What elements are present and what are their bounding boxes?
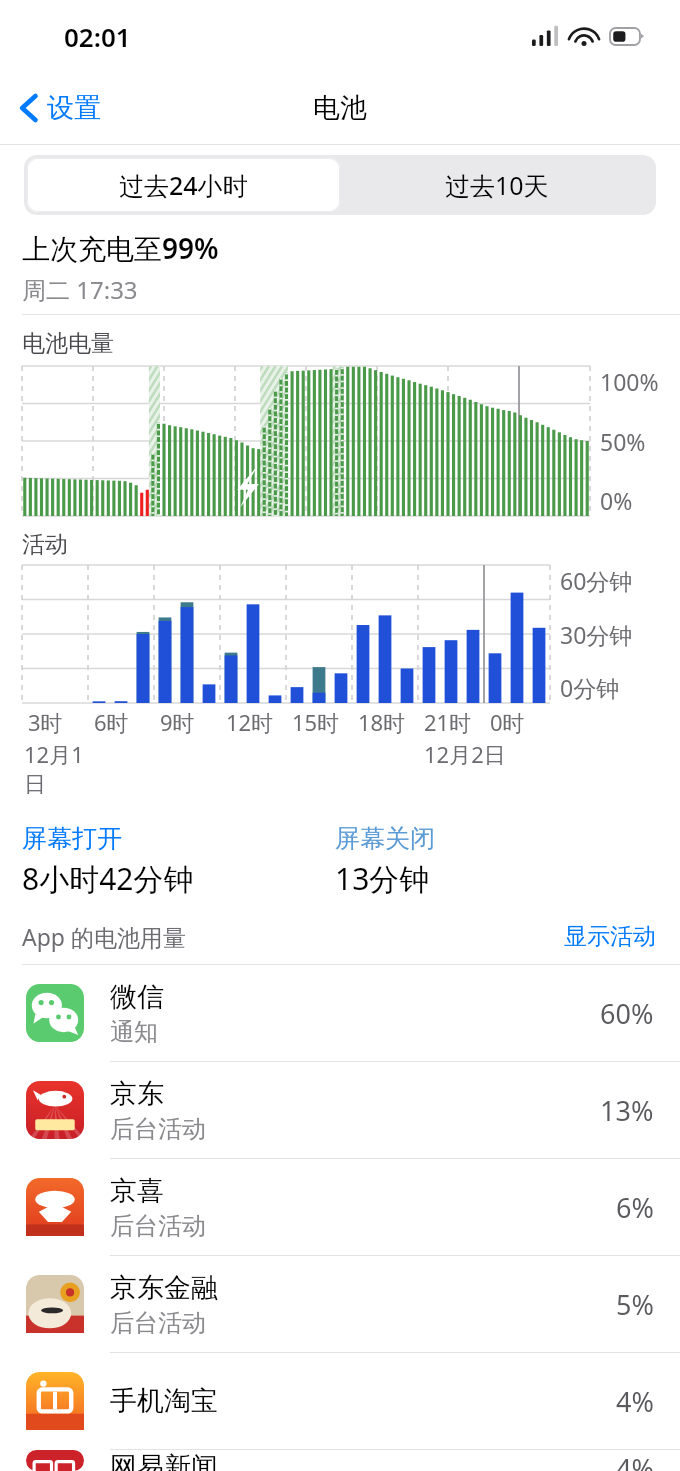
staticText: 02:01 [64,19,131,54]
staticText: 过去10天 [445,168,549,202]
staticText: 屏幕打开 [22,823,122,854]
staticText: 电池电量 [22,329,114,358]
button[interactable]: 显示活动 [564,922,656,951]
staticText: 5% [616,1286,654,1323]
staticText: 通知 [110,1017,158,1047]
button[interactable]: 京东金融 [0,1256,680,1352]
button[interactable]: 设置 [0,85,115,131]
staticText: 后台活动 [110,1114,206,1144]
staticText: 6% [616,1189,654,1226]
button[interactable]: 京东 [0,1062,680,1158]
staticText: 微信 [110,980,164,1014]
staticText: 12时 [226,707,274,737]
staticText: 过去24小时 [119,168,248,202]
staticText: 50% [600,426,646,457]
staticText: 12月2日 [424,739,506,769]
staticText: 15时 [292,707,340,737]
staticText: 8小时42分钟 [22,858,194,899]
button[interactable]: 京喜 [0,1159,680,1255]
staticText: 活动 [22,530,68,559]
staticText: 12月1日 [24,739,88,799]
staticText: 显示活动 [564,922,656,951]
staticText: 后台活动 [110,1211,206,1241]
staticText: 60分钟 [560,565,633,596]
staticText: 周二 17:33 [22,273,138,306]
staticText: 13% [600,1092,654,1129]
button[interactable]: 网易新闻 [0,1450,680,1471]
staticText: 0% [600,485,633,516]
staticText: 后台活动 [110,1308,206,1338]
button[interactable]: 过去10天 [340,158,653,212]
staticText: 0时 [490,707,525,737]
staticText: 0分钟 [560,672,620,703]
staticText: 手机淘宝 [110,1384,218,1418]
staticText: 13分钟 [335,858,430,899]
staticText: 9时 [160,707,195,737]
staticText: 6时 [94,707,129,737]
staticText: 屏幕关闭 [335,823,435,854]
staticText: 上次充电至99% [22,229,219,267]
staticText: 4% [616,1383,654,1420]
staticText: 3时 [28,707,63,737]
staticText: 100% [600,366,659,397]
button[interactable]: 手机淘宝 [0,1353,680,1449]
staticText: 网易新闻 [110,1450,218,1471]
staticText: 京东金融 [110,1271,218,1305]
staticText: 京喜 [110,1174,164,1208]
staticText: 30分钟 [560,619,633,650]
staticText: 京东 [110,1077,164,1111]
staticText: 60% [600,995,654,1032]
staticText: 4% [616,1450,654,1471]
staticText: 18时 [358,707,406,737]
staticText: 电池 [313,91,367,125]
staticText: 21时 [424,707,472,737]
staticText: 设置 [47,91,101,125]
button[interactable]: 过去24小时 [27,158,340,212]
button[interactable]: 微信 [0,965,680,1061]
staticText: App 的电池用量 [22,921,186,952]
